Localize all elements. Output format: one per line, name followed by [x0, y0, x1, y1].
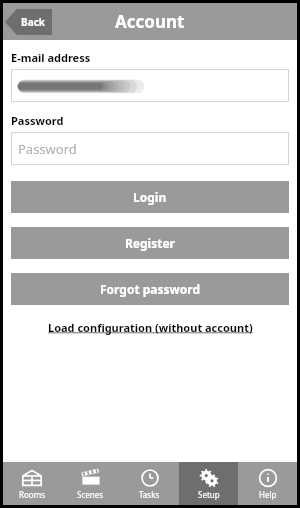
staticText: Account [115, 10, 185, 33]
staticText: Setup [198, 489, 220, 500]
staticText: Password [18, 140, 77, 158]
button[interactable]: Register [11, 227, 289, 259]
staticText: E-mail address [11, 50, 91, 65]
staticText: Back [21, 15, 45, 29]
staticText: Login [133, 189, 167, 205]
staticText: Load configuration (without account) [48, 320, 253, 335]
button[interactable]: Forgot password [11, 273, 289, 305]
button[interactable]: Rooms [3, 462, 61, 505]
button[interactable]: Scenes [61, 462, 120, 505]
button[interactable]: Setup [179, 462, 238, 505]
button[interactable]: Login [11, 181, 289, 213]
button[interactable]: Password [11, 132, 289, 165]
staticText: Register [125, 235, 175, 251]
button[interactable]: Back [5, 9, 52, 35]
button[interactable]: Help [238, 462, 297, 505]
staticText: Rooms [19, 489, 45, 500]
staticText: Help [259, 489, 277, 500]
staticText: Scenes [77, 489, 104, 500]
staticText: Tasks [139, 489, 160, 500]
button[interactable]: Load configuration (without account) [11, 320, 289, 335]
button[interactable]: E-mail address [11, 69, 289, 102]
staticText: Password [11, 113, 64, 128]
button[interactable]: Tasks [120, 462, 179, 505]
staticText: Forgot password [100, 281, 201, 297]
